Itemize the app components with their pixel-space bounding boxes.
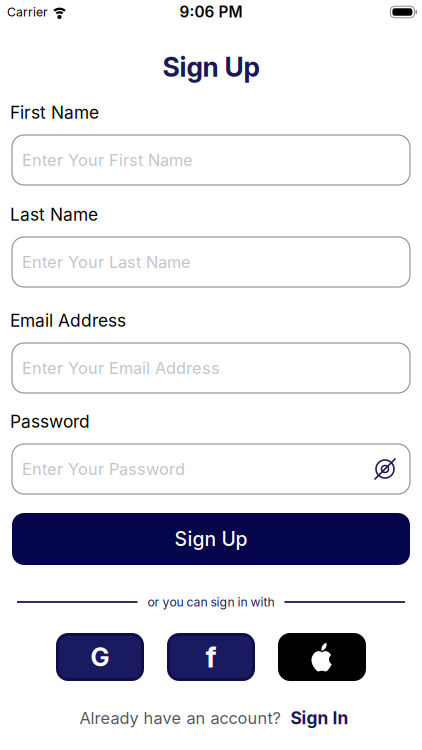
staticText: Carrier [7,5,48,19]
staticText: Last Name [10,204,98,225]
staticText: G [90,642,109,672]
staticText: Sign Up [174,527,247,551]
staticText: Email Address [10,310,126,331]
staticText: Enter Your First Name [22,150,193,170]
staticText: Enter Your Last Name [22,252,191,272]
staticText: Sign In [290,707,348,728]
staticText: Password [10,411,90,432]
staticText: Sign Up [162,51,259,83]
staticText: f [205,640,216,674]
staticText: Already have an account? [79,708,280,728]
staticText: First Name [10,102,99,123]
staticText: Enter Your Email Address [22,358,220,378]
staticText: Enter Your Password [22,459,185,479]
staticText: 9:06 PM [179,3,242,21]
staticText: or you can sign in with [147,595,274,609]
